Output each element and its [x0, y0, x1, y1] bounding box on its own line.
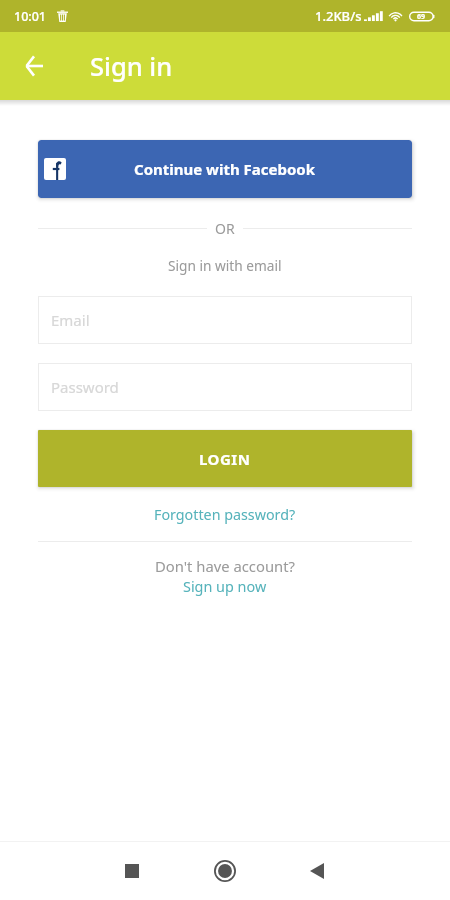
staticText: OR [215, 219, 235, 238]
staticText: Password [51, 377, 119, 397]
button[interactable]: Back [0, 32, 63, 100]
staticText: Email [51, 310, 90, 330]
button[interactable]: Sign up now [38, 577, 412, 597]
staticText: Forgotten password? [154, 505, 296, 524]
staticText: LOGIN [199, 449, 251, 469]
button[interactable]: Password [38, 363, 412, 411]
staticText: 69 [417, 12, 426, 22]
button[interactable]: Forgotten password? [38, 505, 412, 524]
staticText: 1.2KB/s [315, 7, 362, 25]
staticText: 10:01 [14, 8, 47, 25]
staticText: Sign in with email [168, 256, 282, 275]
staticText: Don't have account? [155, 556, 295, 576]
button[interactable]: Continue with Facebook [38, 140, 412, 198]
button[interactable]: Back [294, 848, 340, 894]
staticText: Continue with Facebook [134, 159, 316, 179]
button[interactable]: Recents [109, 848, 155, 894]
button[interactable]: Email [38, 296, 412, 344]
button[interactable]: Home [202, 848, 248, 894]
staticText: Sign up now [183, 577, 267, 597]
staticText: Sign in [90, 49, 173, 84]
button[interactable]: LOGIN [38, 430, 412, 487]
